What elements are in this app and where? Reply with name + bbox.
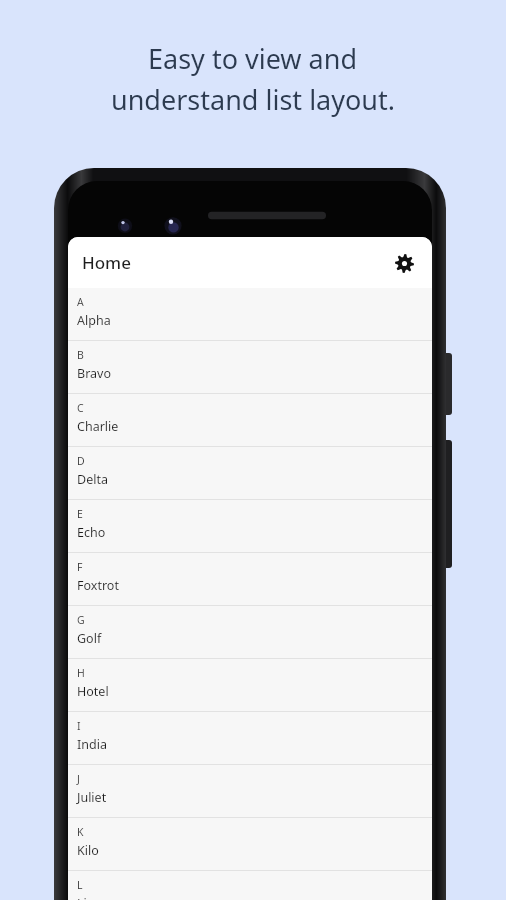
staticText: C <box>77 401 84 415</box>
staticText: Easy to view and <box>148 40 358 77</box>
staticText: Home <box>82 251 131 274</box>
staticText: H <box>77 666 85 680</box>
button[interactable]: A <box>68 288 432 341</box>
staticText: Lima <box>77 895 106 900</box>
staticText: Hotel <box>77 683 109 700</box>
staticText: Juliet <box>77 789 107 806</box>
button[interactable]: H <box>68 659 432 712</box>
staticText: J <box>77 772 80 786</box>
button[interactable]: B <box>68 341 432 394</box>
staticText: L <box>77 878 83 892</box>
button[interactable]: E <box>68 500 432 553</box>
staticText: Bravo <box>77 365 111 382</box>
staticText: Delta <box>77 471 108 488</box>
staticText: India <box>77 736 107 753</box>
button[interactable]: F <box>68 553 432 606</box>
staticText: Golf <box>77 630 102 647</box>
button[interactable]: Settings <box>386 245 422 281</box>
staticText: G <box>77 613 85 627</box>
staticText: F <box>77 560 83 574</box>
button[interactable]: D <box>68 447 432 500</box>
button[interactable]: I <box>68 712 432 765</box>
button[interactable]: G <box>68 606 432 659</box>
staticText: B <box>77 348 84 362</box>
staticText: D <box>77 454 85 468</box>
staticText: Kilo <box>77 842 99 859</box>
staticText: I <box>77 719 81 733</box>
staticText: Alpha <box>77 312 111 329</box>
staticText: Charlie <box>77 418 119 435</box>
staticText: E <box>77 507 83 521</box>
button[interactable]: J <box>68 765 432 818</box>
staticText: K <box>77 825 84 839</box>
staticText: A <box>77 295 84 309</box>
staticText: understand list layout. <box>111 81 396 118</box>
button[interactable]: K <box>68 818 432 871</box>
staticText: Foxtrot <box>77 577 119 594</box>
staticText: Echo <box>77 524 106 541</box>
button[interactable]: L <box>68 871 432 900</box>
button[interactable]: C <box>68 394 432 447</box>
